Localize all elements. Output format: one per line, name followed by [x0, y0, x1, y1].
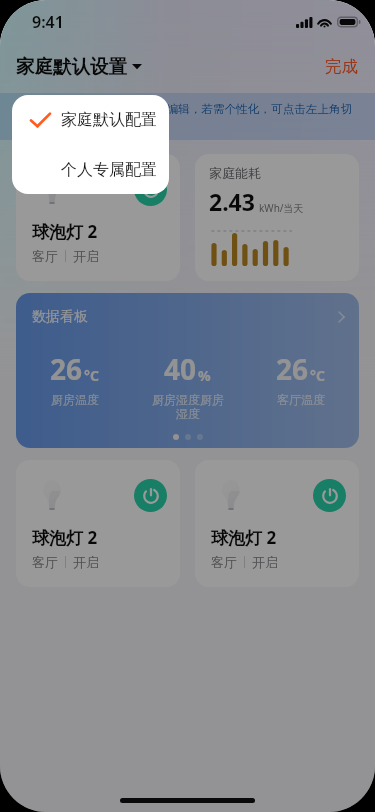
staticText: 26	[50, 350, 83, 388]
button[interactable]: 电源开关	[16, 460, 180, 587]
staticText: %	[198, 366, 211, 385]
button[interactable]: 数据看板	[16, 293, 359, 448]
staticText: 球泡灯 2	[32, 526, 98, 549]
staticText: 开启	[73, 554, 99, 570]
staticText: 40	[164, 350, 197, 388]
staticText: 球泡灯 2	[211, 526, 277, 549]
button[interactable]: 家庭能耗	[195, 154, 359, 281]
staticText: 26	[276, 350, 309, 388]
staticText: 客厅	[32, 248, 58, 264]
button[interactable]: 电源开关	[134, 479, 167, 512]
button[interactable]: 个人专属配置	[12, 145, 169, 194]
button[interactable]: 电源开关	[16, 154, 180, 281]
staticText: 2.43	[209, 186, 255, 217]
staticText: 家庭默认设置	[16, 55, 127, 78]
staticText: 个人专属配置	[61, 160, 157, 180]
staticText: 家庭默认配置	[61, 110, 157, 130]
staticText: 当前为家庭默认配置，可统一编辑，若需个性化，可点击左上角切	[16, 102, 353, 117]
staticText: 客厅	[211, 554, 237, 570]
button[interactable]: 完成	[324, 51, 359, 82]
staticText: 家庭能耗	[209, 165, 261, 181]
staticText: 客厅温度	[264, 392, 338, 407]
staticText: °C	[84, 366, 99, 385]
staticText: 厨房湿度厨房湿度	[151, 392, 225, 422]
button[interactable]: 电源开关	[195, 460, 359, 587]
staticText: 客厅	[32, 554, 58, 570]
staticText: 9:41	[32, 11, 64, 33]
staticText: 开启	[252, 554, 278, 570]
button[interactable]: 电源开关	[313, 479, 346, 512]
staticText: 厨房温度	[38, 392, 112, 407]
staticText: kWh/当天	[259, 201, 304, 215]
staticText: 完成	[325, 56, 358, 77]
staticText: °C	[310, 366, 325, 385]
staticText: 开启	[73, 248, 99, 264]
staticText: 球泡灯 2	[32, 220, 98, 243]
button[interactable]: 电源开关	[134, 173, 167, 206]
button[interactable]: 当前为家庭默认配置，可统一编辑，若需个性化，可点击左上角切	[0, 93, 375, 140]
button[interactable]: 家庭默认配置	[12, 95, 169, 145]
staticText: 数据看板	[32, 308, 88, 326]
button[interactable]: 家庭默认设置	[16, 51, 142, 82]
